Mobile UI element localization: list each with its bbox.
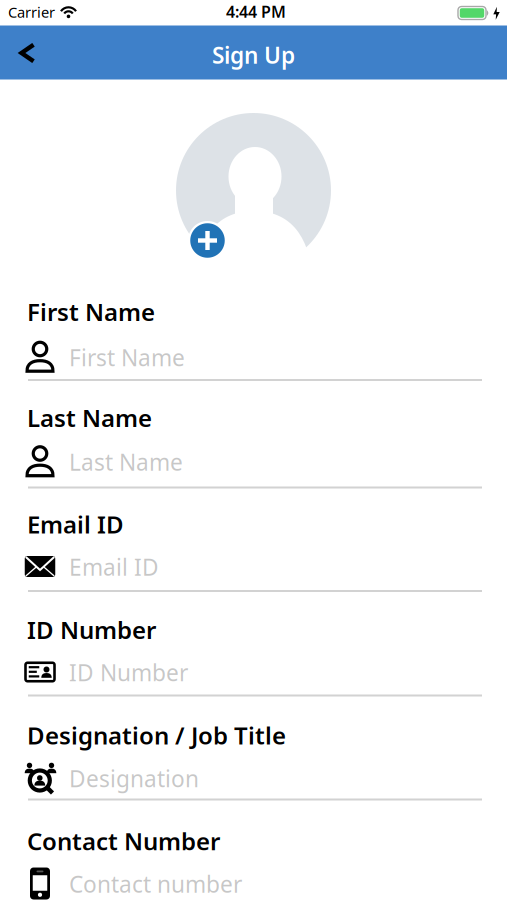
staticText: Designation <box>69 763 199 793</box>
button[interactable]: Contact number <box>24 865 482 900</box>
staticText: ID Number <box>27 614 156 646</box>
button[interactable]: Last Name <box>24 443 482 487</box>
button[interactable]: ID Number <box>24 654 482 698</box>
staticText: Sign Up <box>212 40 295 70</box>
button[interactable] <box>10 35 43 71</box>
staticText: First Name <box>69 342 185 372</box>
staticText: Contact Number <box>27 825 220 857</box>
staticText: Last Name <box>27 402 152 434</box>
staticText: ID Number <box>69 657 188 687</box>
staticText: Carrier <box>8 2 55 22</box>
staticText: 4:44 PM <box>226 1 286 22</box>
button[interactable] <box>188 221 227 260</box>
button[interactable]: First Name <box>24 339 482 383</box>
staticText: Email ID <box>69 552 159 582</box>
staticText: Last Name <box>69 447 183 477</box>
staticText: First Name <box>27 296 155 328</box>
staticText: Contact number <box>69 869 242 899</box>
button[interactable]: Designation <box>24 760 482 804</box>
button[interactable]: Email ID <box>24 548 482 592</box>
staticText: Email ID <box>27 508 124 540</box>
staticText: Designation / Job Title <box>27 719 286 751</box>
